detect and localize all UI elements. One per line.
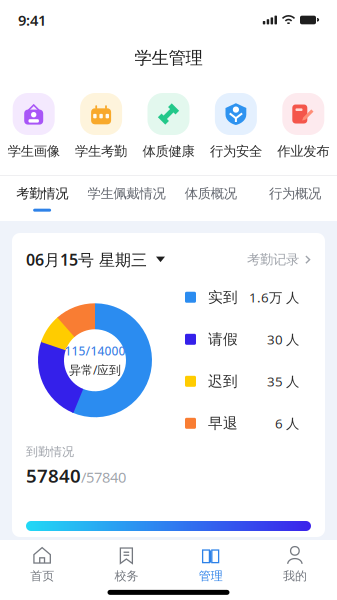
staticText: 06月15号 星期三 xyxy=(26,249,147,270)
staticText: 体质概况 xyxy=(185,185,237,202)
button[interactable]: 校务 xyxy=(84,546,168,583)
button[interactable]: 学生佩戴情况 xyxy=(84,176,168,221)
staticText: 学生画像 xyxy=(8,143,60,159)
button[interactable]: 管理 xyxy=(168,546,253,583)
staticText: 学生佩戴情况 xyxy=(87,185,165,202)
button[interactable]: 首页 xyxy=(0,546,84,583)
button[interactable]: 作业发布 xyxy=(270,93,337,159)
staticText: 6 人 xyxy=(275,414,299,432)
staticText: 作业发布 xyxy=(277,143,329,159)
button[interactable]: 行为安全 xyxy=(202,93,270,159)
staticText: 到勤情况 xyxy=(26,444,74,459)
staticText: 行为概况 xyxy=(269,185,321,202)
button[interactable]: 我的 xyxy=(253,546,337,583)
staticText: 异常/应到 xyxy=(69,362,121,378)
staticText: /57840 xyxy=(81,467,126,487)
staticText: 考勤情况 xyxy=(16,185,68,202)
staticText: 57840 xyxy=(26,463,81,488)
staticText: 115/14000 xyxy=(64,343,125,359)
staticText: 35 人 xyxy=(267,372,299,390)
button[interactable]: 考勤记录 xyxy=(247,251,311,268)
button[interactable]: 学生画像 xyxy=(0,93,67,159)
staticText: 学生管理 xyxy=(134,47,202,69)
staticText: 校务 xyxy=(114,569,138,583)
staticText: 早退 xyxy=(208,414,238,432)
staticText: 行为安全 xyxy=(210,143,262,159)
staticText: 首页 xyxy=(30,569,54,583)
button[interactable]: 行为概况 xyxy=(253,176,337,221)
staticText: 30 人 xyxy=(267,330,299,348)
button[interactable]: 体质概况 xyxy=(168,176,253,221)
staticText: 迟到 xyxy=(208,372,238,390)
staticText: 管理 xyxy=(199,569,223,583)
staticText: 考勤记录 xyxy=(247,251,299,268)
staticText: 学生考勤 xyxy=(75,143,127,159)
staticText: 体质健康 xyxy=(142,143,194,159)
button[interactable]: 体质健康 xyxy=(135,93,202,159)
button[interactable]: 学生考勤 xyxy=(67,93,135,159)
staticText: 实到 xyxy=(208,288,238,306)
button[interactable]: 考勤情况 xyxy=(0,176,84,221)
staticText: 9:41 xyxy=(18,10,46,30)
staticText: 我的 xyxy=(283,569,307,583)
staticText: 1.6万 人 xyxy=(249,288,299,306)
staticText: 请假 xyxy=(208,330,238,348)
